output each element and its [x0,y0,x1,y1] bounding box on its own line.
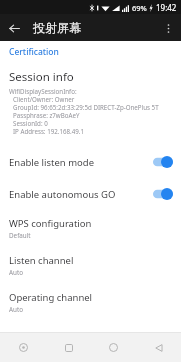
staticText: Client/Owner: Owner [13,95,75,103]
button[interactable]: Listen channel [0,247,181,284]
staticText: WifiDisplaySessionInfo: [9,87,77,95]
button[interactable]: Screenshot [0,333,46,362]
button[interactable]: Operating channel [0,284,181,321]
button[interactable]: Toggle [153,156,173,168]
staticText: 投射屏幕 [33,20,81,35]
staticText: 69% [132,3,147,13]
button[interactable]: Toggle [153,188,173,200]
staticText: Operating channel [9,291,93,304]
button[interactable]: Recents [46,333,91,362]
button[interactable]: Home [91,333,136,362]
button[interactable]: Enable listen mode [0,146,181,178]
staticText: Enable autonomous GO [9,188,153,201]
button[interactable]: More options [158,18,178,38]
button[interactable]: Session info [0,67,181,137]
button[interactable]: WPS configuration [0,210,181,247]
staticText: Auto [9,268,23,277]
staticText: Passphrase: z7wBoAeY [13,111,80,119]
staticText: 19:42 [156,2,177,13]
staticText: IP Address: 192.168.49.1 [13,127,84,135]
staticText: Certification [9,46,59,58]
staticText: WPS configuration [9,217,92,230]
button[interactable]: Back [136,333,181,362]
button[interactable]: Back [4,18,24,38]
staticText: Enable listen mode [9,156,153,169]
button[interactable]: Enable autonomous GO [0,178,181,210]
staticText: Session info [9,69,74,85]
staticText: GroupId: 96:65:2d:33:29:5d DIRECT-Zp-One… [13,103,159,111]
staticText: Listen channel [9,254,74,267]
staticText: Auto [9,305,23,314]
staticText: SessionId: 0 [13,119,48,127]
staticText: Default [9,231,31,240]
